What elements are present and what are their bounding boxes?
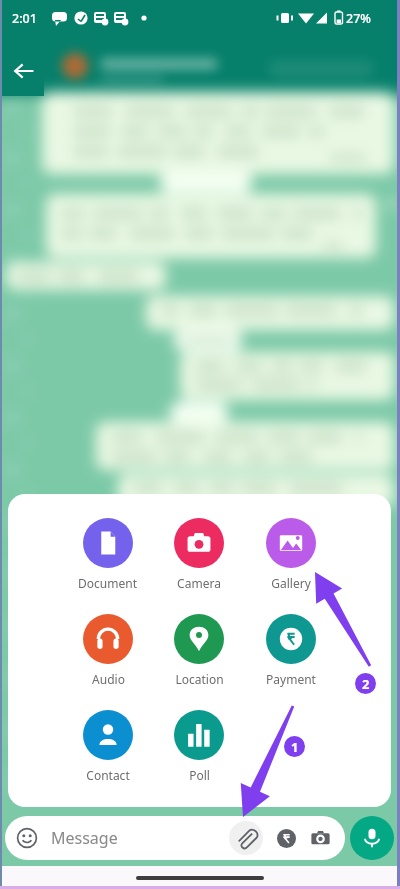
button[interactable]: Voice message <box>350 816 394 860</box>
button[interactable]: Document <box>78 498 137 591</box>
button[interactable]: Location <box>174 594 224 687</box>
button[interactable]: Poll <box>174 690 224 783</box>
staticText: Audio <box>92 671 125 687</box>
staticText: Payment <box>266 671 316 687</box>
button[interactable]: Payment <box>271 823 301 853</box>
staticText: Gallery <box>271 575 311 591</box>
button[interactable]: Camera <box>305 823 335 853</box>
staticText: Poll <box>189 767 210 783</box>
button[interactable]: Contact <box>83 690 133 783</box>
staticText: 2 <box>362 675 370 693</box>
button[interactable]: Gallery <box>266 498 316 591</box>
staticText: 27% <box>346 10 371 27</box>
button[interactable]: Camera <box>174 498 224 591</box>
button[interactable]: Audio <box>83 594 133 687</box>
staticText: Location <box>175 671 224 687</box>
staticText: 2:01 <box>12 10 37 27</box>
staticText: Camera <box>177 575 221 591</box>
staticText: Message <box>51 827 118 849</box>
staticText: Document <box>78 575 137 591</box>
button[interactable]: Back <box>5 52 43 90</box>
button[interactable]: Message <box>5 816 345 860</box>
button[interactable]: Payment <box>266 594 316 687</box>
staticText: Contact <box>86 767 130 783</box>
button[interactable]: Attach <box>229 821 263 855</box>
staticText: 1 <box>291 738 299 756</box>
